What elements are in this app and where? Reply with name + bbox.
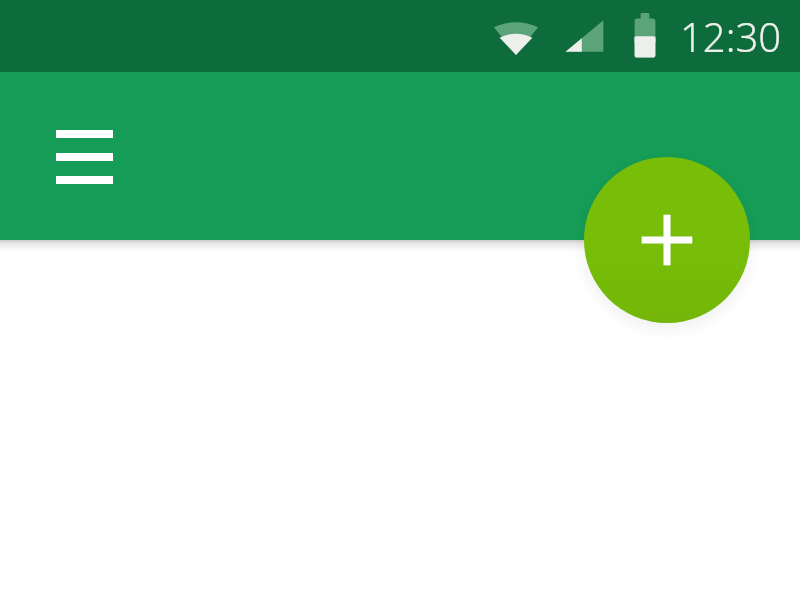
button[interactable]: Open navigation menu [40, 122, 130, 192]
staticText: 12:30 [680, 9, 782, 63]
button[interactable]: Add [584, 157, 750, 323]
